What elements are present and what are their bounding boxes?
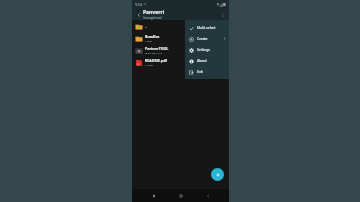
button[interactable]: Settings <box>185 44 229 55</box>
button[interactable]: PartnerTOOL <box>132 44 229 56</box>
staticText: Settings <box>197 47 210 52</box>
button[interactable]: README.pdf <box>132 56 229 68</box>
staticText: Create <box>197 36 208 41</box>
button[interactable]: Back <box>148 190 159 201</box>
staticText: 1.4 MB <box>145 63 153 66</box>
button[interactable]: Bundles <box>132 32 229 44</box>
staticText: 389.2 MB · 7.12 <box>145 51 163 54</box>
staticText: Bundles <box>145 34 160 39</box>
button[interactable]: Home <box>175 190 186 201</box>
staticText: Multi-select <box>197 25 216 30</box>
staticText: About <box>197 58 207 63</box>
staticText: README.pdf <box>145 58 167 63</box>
staticText: Exit <box>197 69 203 74</box>
staticText: 9:54 <box>135 2 142 7</box>
staticText: 2024-01-11 <box>214 37 227 40</box>
staticText: .. <box>145 24 147 29</box>
button[interactable]: About <box>185 55 229 66</box>
staticText: PartnerTOOL <box>145 46 169 51</box>
staticText: Panverri <box>143 9 165 16</box>
button[interactable]: Create <box>185 33 229 44</box>
button[interactable]: Recents <box>202 190 213 201</box>
button[interactable]: More options <box>218 10 227 19</box>
button[interactable]: Exit <box>185 66 229 77</box>
staticText: /storage/emul <box>143 16 162 20</box>
button[interactable]: Multi-select <box>185 22 229 33</box>
button[interactable]: .. <box>132 20 229 32</box>
staticText: 1 item <box>145 39 153 42</box>
button[interactable]: Back <box>134 10 143 19</box>
button[interactable]: Add <box>211 168 224 181</box>
